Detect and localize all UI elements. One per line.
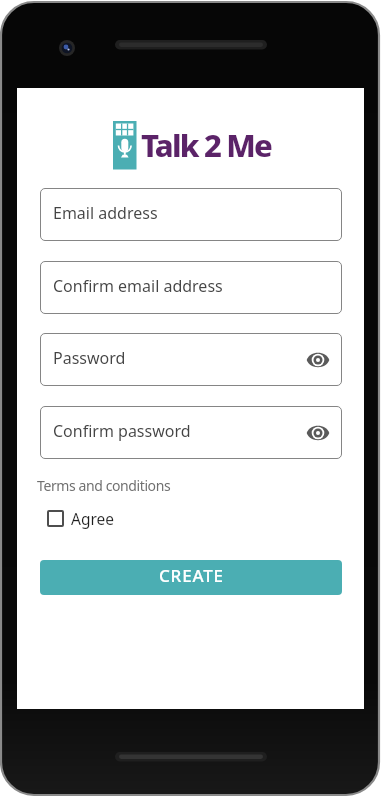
staticText: Confirm password [53, 420, 191, 442]
staticText: Confirm email address [53, 275, 223, 297]
button[interactable] [307, 352, 329, 368]
staticText: CREATE [159, 564, 224, 587]
staticText: Email address [53, 202, 158, 224]
button[interactable]: Password [40, 333, 342, 386]
staticText: Terms and conditions [37, 476, 171, 495]
button[interactable]: Confirm password [40, 406, 342, 459]
button[interactable] [307, 425, 329, 441]
button[interactable]: CREATE [40, 560, 342, 595]
button[interactable]: Agree [47, 507, 115, 529]
staticText: Agree [71, 508, 115, 529]
button[interactable]: Confirm email address [40, 261, 342, 314]
staticText: Password [53, 347, 126, 369]
button[interactable]: Email address [40, 188, 342, 241]
staticText: Talk 2 Me [141, 124, 272, 166]
